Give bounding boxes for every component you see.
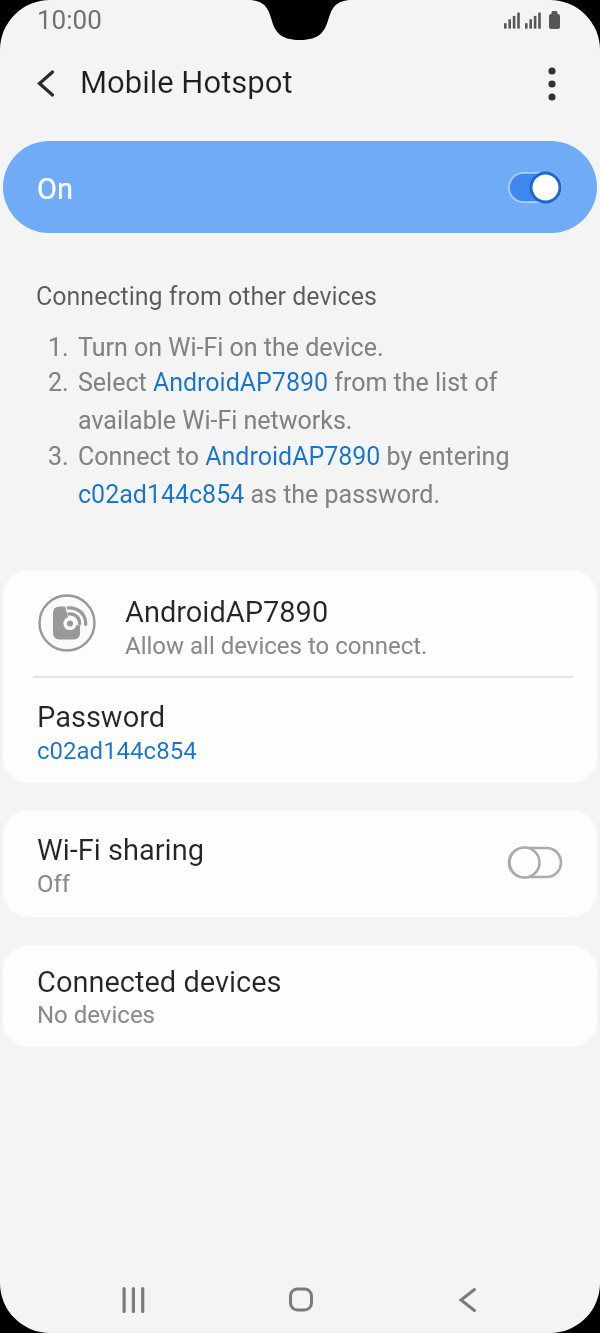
button[interactable] bbox=[101, 1276, 165, 1326]
button[interactable]: Wi-Fi sharing bbox=[3, 810, 597, 917]
staticText: Allow all devices to connect. bbox=[125, 632, 428, 660]
staticText: c02ad144c854 as the password. bbox=[78, 480, 440, 509]
button[interactable] bbox=[3, 678, 597, 783]
staticText: c02ad144c854 bbox=[37, 737, 197, 765]
staticText: AndroidAP7890 bbox=[125, 595, 329, 629]
staticText: 2. bbox=[48, 368, 69, 397]
staticText: Mobile Hotspot bbox=[80, 64, 293, 100]
button[interactable] bbox=[268, 1276, 332, 1326]
staticText: Connected devices bbox=[37, 965, 282, 999]
staticText: Wi-Fi sharing bbox=[37, 833, 204, 867]
staticText: Select AndroidAP7890 from the list of bbox=[78, 368, 498, 397]
button[interactable] bbox=[435, 1276, 499, 1326]
button[interactable] bbox=[22, 60, 70, 108]
staticText: 10:00 bbox=[37, 5, 102, 35]
staticText: Off bbox=[37, 870, 71, 898]
staticText: Connect to AndroidAP7890 by entering bbox=[78, 442, 510, 471]
staticText: 3. bbox=[48, 442, 69, 471]
staticText: available Wi-Fi networks. bbox=[78, 406, 353, 435]
staticText: Connecting from other devices bbox=[36, 282, 377, 311]
button[interactable] bbox=[3, 570, 597, 676]
button[interactable]: On bbox=[3, 141, 597, 233]
button[interactable]: Connected devices bbox=[3, 945, 597, 1047]
staticText: 1. bbox=[48, 333, 69, 362]
button[interactable] bbox=[530, 60, 576, 108]
staticText: Turn on Wi-Fi on the device. bbox=[78, 333, 384, 362]
staticText: No devices bbox=[37, 1001, 156, 1029]
staticText: Password bbox=[37, 700, 166, 734]
staticText: On bbox=[37, 172, 73, 206]
